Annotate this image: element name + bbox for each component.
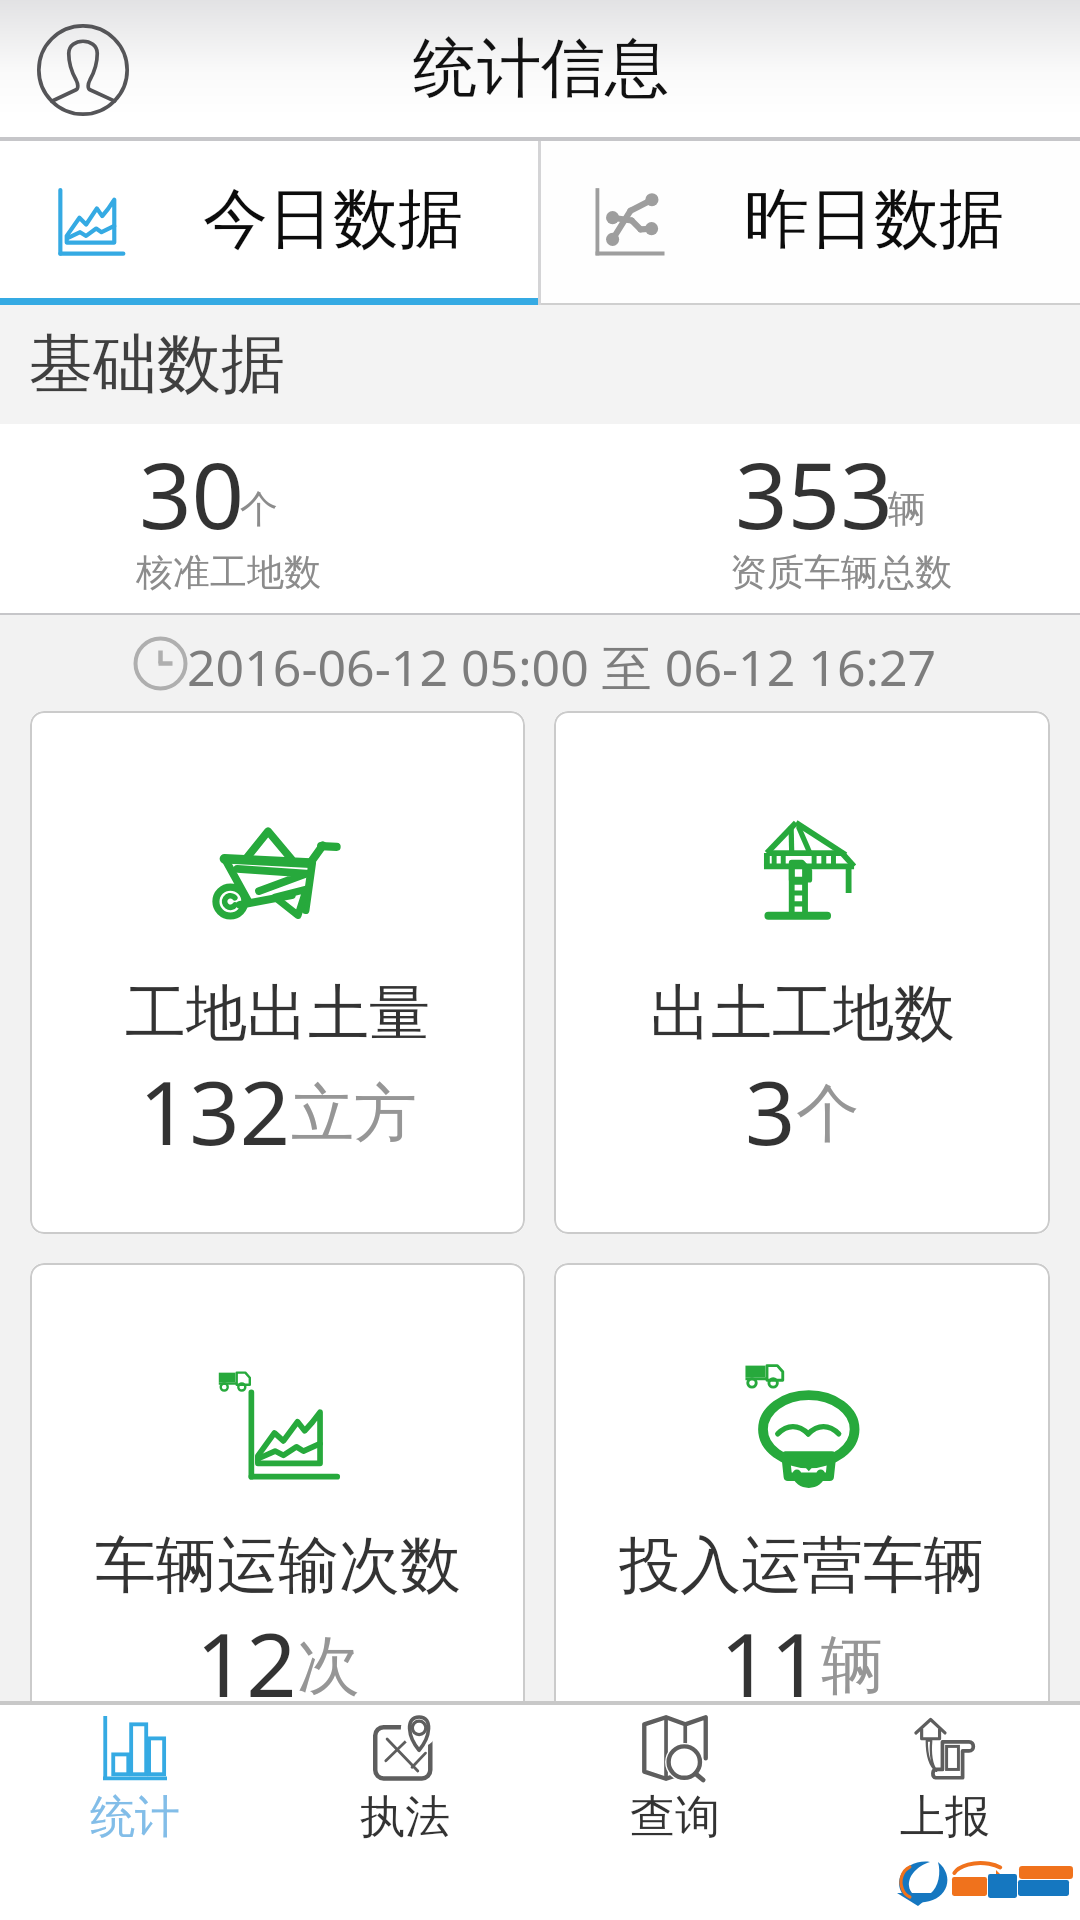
staticText: 12	[196, 1603, 297, 1723]
button[interactable]: 353	[568, 424, 1080, 613]
staticText: 上报	[900, 1789, 990, 1846]
staticText: 2016-06-12 05:00 至 06-12 16:27	[187, 633, 937, 701]
button[interactable]: 工地出土量	[30, 711, 525, 1234]
staticText: 出土工地数	[650, 975, 955, 1052]
staticText: 辆	[821, 1626, 884, 1705]
staticText: 今日数据	[203, 178, 463, 260]
staticText: 132	[139, 1051, 291, 1171]
button[interactable]: 昨日数据	[541, 141, 1080, 305]
staticText: 查询	[630, 1789, 720, 1846]
staticText: 基础数据	[29, 324, 285, 405]
button[interactable]: 出土工地数	[554, 711, 1050, 1234]
button[interactable]: 执法	[270, 1705, 540, 1920]
button[interactable]: Profile	[37, 24, 129, 116]
button[interactable]: 投入运营车辆	[554, 1263, 1050, 1786]
staticText: 辆	[888, 485, 926, 533]
staticText: 工地出土量	[125, 975, 430, 1052]
staticText: 统计信息	[413, 28, 669, 109]
staticText: 昨日数据	[744, 178, 1004, 260]
staticText: 个	[796, 1074, 859, 1153]
staticText: 立方	[291, 1074, 417, 1153]
staticText: 个	[240, 485, 278, 533]
button[interactable]: 上报	[810, 1705, 1080, 1920]
button[interactable]: 30	[0, 424, 436, 613]
button[interactable]: 统计	[0, 1705, 270, 1920]
staticText: 资质车辆总数	[730, 549, 952, 596]
staticText: 车辆运输次数	[95, 1527, 461, 1604]
staticText: 3	[745, 1051, 796, 1171]
staticText: 执法	[360, 1789, 450, 1846]
staticText: 核准工地数	[136, 549, 321, 596]
staticText: 11	[720, 1603, 821, 1723]
button[interactable]: 查询	[540, 1705, 810, 1920]
staticText: 次	[297, 1626, 360, 1705]
staticText: 统计	[90, 1789, 180, 1846]
button[interactable]: 今日数据	[0, 141, 538, 305]
staticText: 353	[735, 431, 893, 556]
button[interactable]: 车辆运输次数	[30, 1263, 525, 1786]
staticText: 投入运营车辆	[619, 1527, 985, 1604]
staticText: 30	[139, 431, 245, 556]
